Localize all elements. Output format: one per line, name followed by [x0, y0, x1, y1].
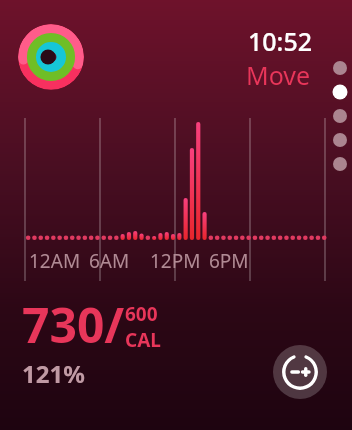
staticText: 121%	[22, 357, 85, 390]
staticText: 6AM	[89, 248, 130, 274]
button[interactable]	[0, 0, 352, 430]
button[interactable]: Activity rings	[18, 24, 84, 90]
staticText: 12AM	[29, 248, 81, 274]
button[interactable]: Change Move Goal	[273, 345, 327, 399]
staticText: 730/	[22, 292, 125, 357]
staticText: 6PM	[209, 248, 249, 274]
staticText: 10:52	[248, 24, 313, 58]
staticText: CAL	[125, 327, 161, 353]
staticText: 12PM	[150, 248, 201, 274]
staticText: Move	[246, 58, 311, 92]
staticText: 600	[125, 301, 158, 327]
